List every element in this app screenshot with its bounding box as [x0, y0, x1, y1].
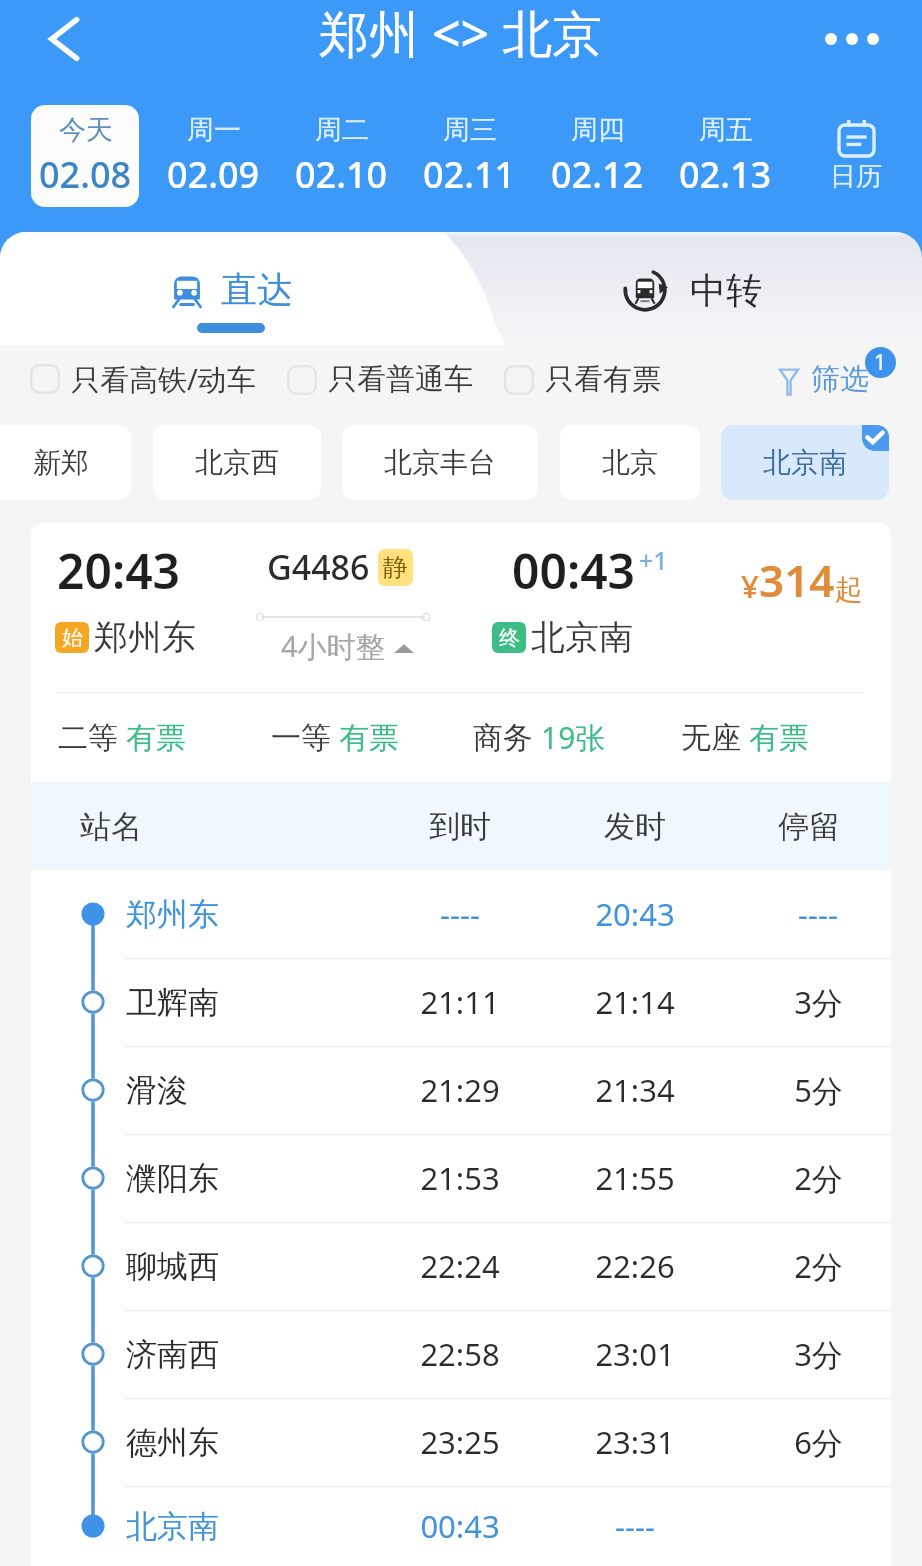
- staticText: 3分: [794, 981, 843, 1023]
- staticText: 314: [759, 550, 835, 610]
- staticText: 北京南: [531, 616, 633, 659]
- staticText: 02.09: [167, 150, 260, 199]
- staticText: 新郑: [33, 445, 89, 480]
- staticText: 5分: [794, 1069, 843, 1111]
- button[interactable]: 聊城西: [31, 1222, 891, 1310]
- button[interactable]: 濮阳东: [31, 1134, 891, 1222]
- staticText: 22:58: [420, 1333, 500, 1375]
- staticText: 郑州 <> 北京: [319, 0, 603, 67]
- staticText: 今天: [59, 113, 113, 147]
- staticText: 22:26: [595, 1245, 675, 1287]
- button[interactable]: 一等: [271, 719, 399, 757]
- staticText: 00:43: [420, 1505, 500, 1547]
- staticText: 郑州东: [126, 895, 219, 934]
- staticText: 有票: [749, 719, 809, 757]
- button[interactable]: 只看普通车: [287, 361, 473, 398]
- staticText: 23:01: [595, 1333, 675, 1375]
- button[interactable]: 直达: [0, 232, 462, 345]
- staticText: 滑浚: [126, 1071, 188, 1110]
- staticText: 周三: [443, 113, 497, 147]
- staticText: +1: [639, 543, 668, 577]
- button[interactable]: 今天: [31, 105, 139, 207]
- button[interactable]: 中转: [462, 232, 922, 345]
- button[interactable]: 北京南: [31, 1486, 891, 1566]
- button[interactable]: 周四: [543, 105, 651, 207]
- staticText: 周二: [315, 113, 369, 147]
- button[interactable]: Back: [0, 0, 105, 78]
- staticText: 周四: [571, 113, 625, 147]
- staticText: 中转: [690, 268, 762, 313]
- button[interactable]: 周五: [671, 105, 779, 207]
- staticText: 6分: [794, 1421, 843, 1463]
- button[interactable]: More options: [812, 0, 922, 78]
- staticText: 起: [835, 572, 863, 607]
- button[interactable]: Calendar: [789, 105, 922, 207]
- button[interactable]: 卫辉南: [31, 958, 891, 1046]
- staticText: ----: [615, 1505, 655, 1547]
- staticText: 1: [874, 348, 887, 377]
- staticText: ----: [440, 893, 480, 935]
- button[interactable]: 德州东: [31, 1398, 891, 1486]
- button[interactable]: 北京: [560, 425, 700, 500]
- staticText: 北京南: [763, 445, 847, 480]
- staticText: 终: [499, 625, 520, 651]
- button[interactable]: 周一: [159, 105, 267, 207]
- button[interactable]: 周二: [287, 105, 395, 207]
- staticText: 2分: [794, 1245, 843, 1287]
- staticText: 聊城西: [126, 1247, 219, 1286]
- staticText: 北京西: [195, 445, 279, 480]
- staticText: 20:43: [595, 893, 675, 935]
- button[interactable]: 郑州东: [31, 870, 891, 958]
- staticText: 21:34: [595, 1069, 675, 1111]
- button[interactable]: 只看有票: [504, 361, 661, 398]
- staticText: 北京丰台: [384, 445, 496, 480]
- staticText: 德州东: [126, 1423, 219, 1462]
- staticText: 2分: [794, 1157, 843, 1199]
- staticText: 只看高铁/动车: [71, 359, 256, 399]
- staticText: 02.11: [423, 150, 516, 199]
- staticText: 只看普通车: [328, 361, 473, 398]
- button[interactable]: 筛选: [779, 361, 900, 398]
- staticText: 21:53: [420, 1157, 500, 1199]
- staticText: 商务: [473, 719, 533, 757]
- button[interactable]: 二等: [58, 719, 186, 757]
- staticText: 21:29: [420, 1069, 500, 1111]
- staticText: 静: [383, 552, 408, 583]
- button[interactable]: 新郑: [0, 425, 131, 500]
- staticText: 周一: [187, 113, 241, 147]
- staticText: 00:43: [512, 538, 636, 603]
- staticText: 濮阳东: [126, 1159, 219, 1198]
- staticText: 济南西: [126, 1335, 219, 1374]
- staticText: 02.08: [39, 150, 132, 199]
- staticText: 02.13: [679, 150, 772, 199]
- button[interactable]: 北京西: [153, 425, 321, 500]
- button[interactable]: 北京南: [721, 425, 889, 500]
- button[interactable]: 北京丰台: [342, 425, 538, 500]
- staticText: 郑州东: [94, 616, 196, 659]
- staticText: 21:11: [420, 981, 500, 1023]
- button[interactable]: 滑浚: [31, 1046, 891, 1134]
- button[interactable]: 只看高铁/动车: [30, 359, 256, 399]
- staticText: 23:31: [595, 1421, 675, 1463]
- staticText: 有票: [126, 719, 186, 757]
- staticText: ¥: [741, 565, 759, 607]
- button[interactable]: 无座: [681, 719, 809, 757]
- staticText: 卫辉南: [126, 983, 219, 1022]
- staticText: 日历: [830, 160, 882, 193]
- staticText: 22:24: [420, 1245, 500, 1287]
- staticText: 21:55: [595, 1157, 675, 1199]
- staticText: 筛选: [811, 361, 869, 398]
- staticText: 始: [62, 625, 83, 651]
- staticText: 北京: [602, 445, 658, 480]
- staticText: 21:14: [595, 981, 675, 1023]
- staticText: 北京南: [126, 1507, 219, 1546]
- staticText: 只看有票: [545, 361, 661, 398]
- staticText: 周五: [699, 113, 753, 147]
- staticText: 无座: [681, 719, 741, 757]
- button[interactable]: 济南西: [31, 1310, 891, 1398]
- staticText: 3分: [794, 1333, 843, 1375]
- button[interactable]: 周三: [415, 105, 523, 207]
- staticText: 02.10: [295, 150, 388, 199]
- staticText: 19张: [541, 717, 606, 758]
- button[interactable]: 商务: [473, 717, 606, 758]
